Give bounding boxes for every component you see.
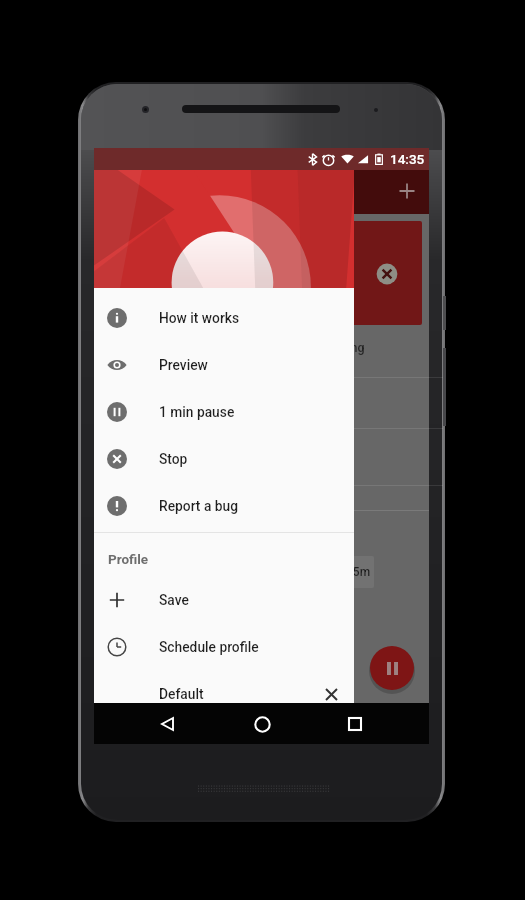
staticText: Default — [159, 686, 204, 702]
staticText: Morning — [318, 340, 365, 355]
button[interactable]: 1 min pause — [94, 388, 354, 435]
staticText: Save — [159, 592, 189, 608]
button[interactable]: Save — [94, 576, 354, 623]
staticText: Schedule profile — [159, 639, 259, 655]
button[interactable]: 15m — [342, 556, 374, 588]
staticText: 14:35 — [390, 151, 425, 167]
button[interactable]: Home — [245, 707, 279, 741]
button[interactable]: Add — [393, 177, 421, 205]
button[interactable]: Back — [150, 707, 184, 741]
button[interactable]: Pause — [370, 646, 414, 690]
button[interactable]: Default — [94, 670, 354, 717]
button[interactable]: Stop — [371, 258, 403, 290]
staticText: Stop — [159, 451, 188, 467]
staticText: How it works — [159, 310, 240, 326]
button[interactable]: Schedule profile — [94, 623, 354, 670]
button[interactable]: Preview — [94, 341, 354, 388]
staticText: 15m — [346, 565, 371, 579]
button[interactable]: Recent apps — [338, 707, 372, 741]
button[interactable]: Remove — [315, 678, 347, 710]
staticText: 1 min pause — [159, 404, 235, 420]
button[interactable]: Stop — [94, 435, 354, 482]
staticText: Preview — [159, 357, 208, 373]
staticText: Profile — [108, 551, 149, 567]
button[interactable]: How it works — [94, 294, 354, 341]
staticText: Report a bug — [159, 498, 239, 514]
button[interactable]: Report a bug — [94, 482, 354, 529]
